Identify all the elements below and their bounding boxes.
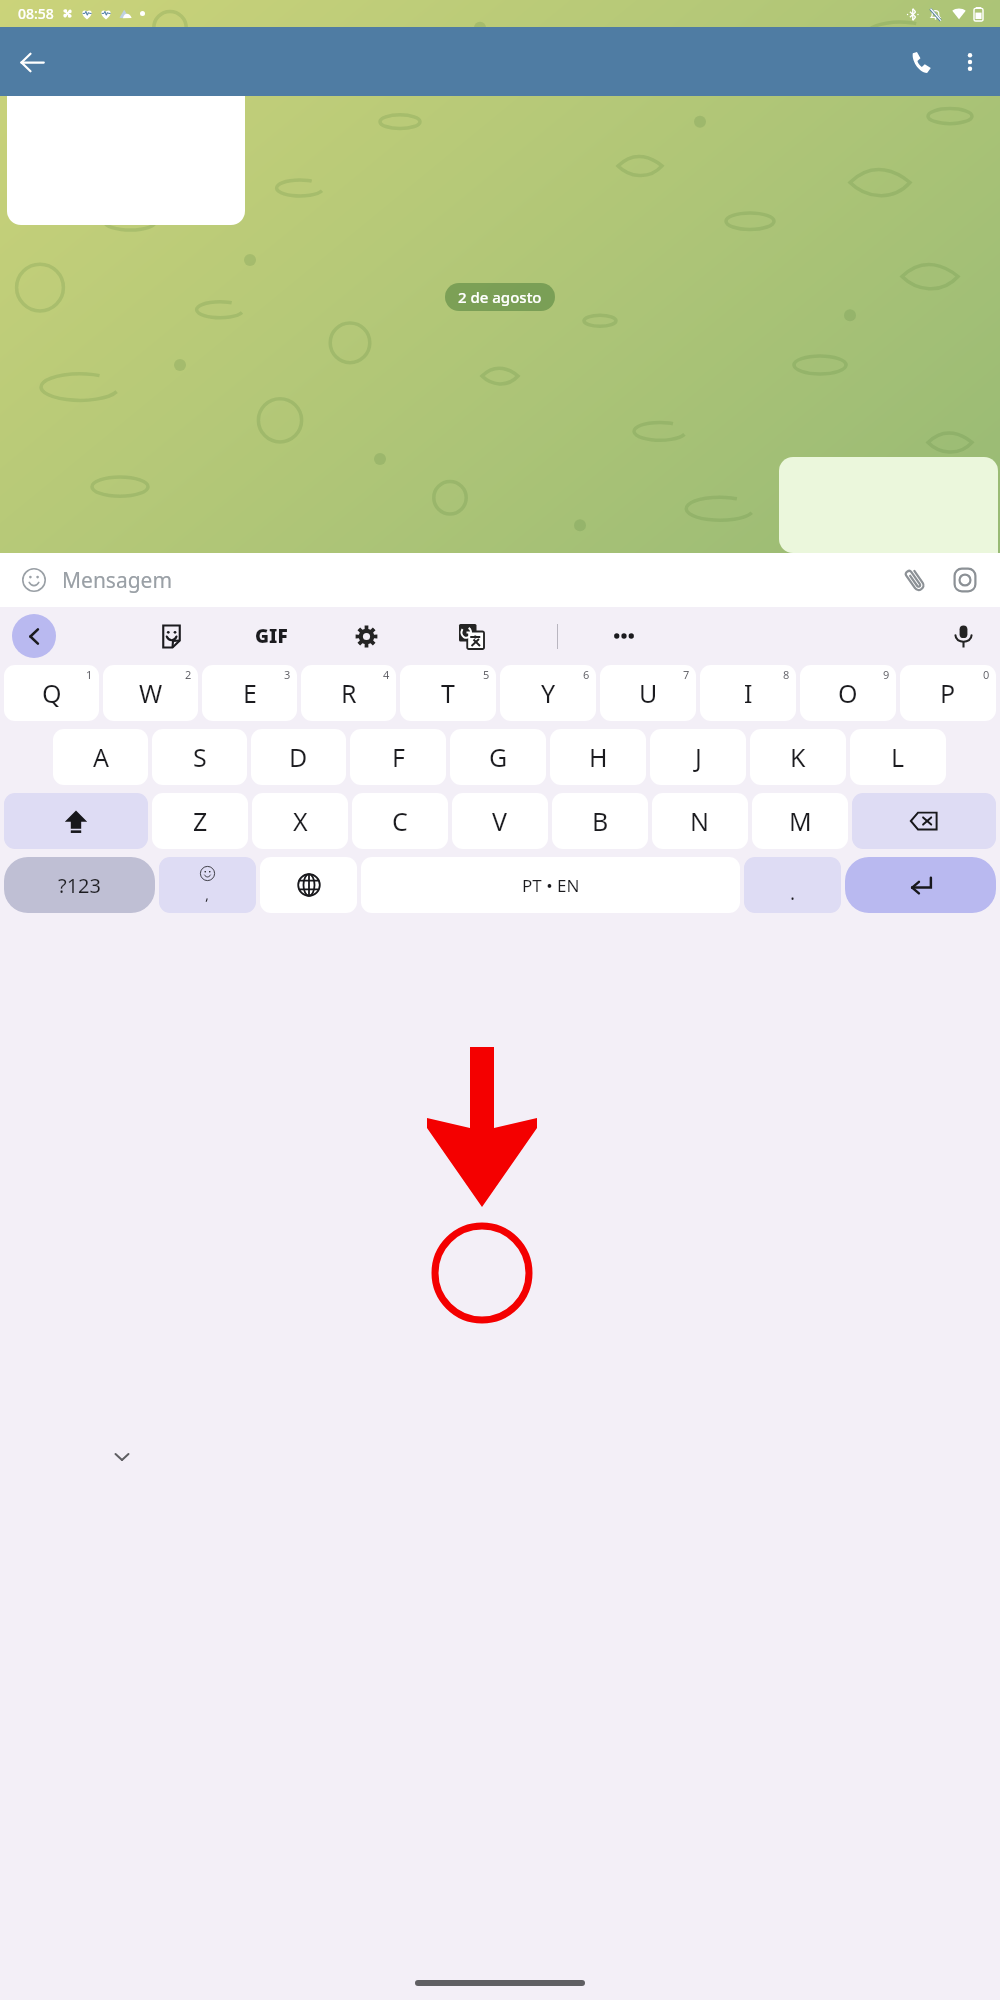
button[interactable]: F [350,729,446,785]
staticText: 2 de agosto [458,287,542,307]
button[interactable]: PT • EN [361,857,740,913]
staticText: 9 [883,667,890,682]
button[interactable]: Emoji [14,560,54,600]
staticText: C [392,804,408,838]
button[interactable]: Emoji and comma [159,857,256,913]
button[interactable]: K [750,729,846,785]
button[interactable]: W [103,665,198,721]
staticText: T [441,676,455,710]
button[interactable]: Z [152,793,248,849]
button[interactable]: ?123 [4,857,155,913]
button[interactable]: Backspace [852,793,996,849]
staticText: P [940,676,956,710]
staticText: 6 [583,667,590,682]
button[interactable]: L [850,729,946,785]
staticText: K [790,740,806,774]
button[interactable]: S [152,729,247,785]
button[interactable]: Call [898,38,946,86]
staticText: N [690,804,710,838]
staticText: 08:58 [18,4,54,23]
staticText: G [489,740,508,774]
staticText: U [639,676,658,710]
button[interactable]: Voice input [940,613,986,659]
button[interactable]: O [800,665,896,721]
button[interactable]: J [650,729,746,785]
button[interactable]: I [700,665,796,721]
button[interactable]: Stickers [148,613,194,659]
button[interactable]: More [601,613,647,659]
staticText: S [193,740,207,774]
button[interactable]: T [400,665,496,721]
staticText: J [695,740,702,774]
staticText: Z [193,804,208,838]
button[interactable]: B [552,793,648,849]
button[interactable]: GIF [245,613,297,659]
button[interactable]: . [744,857,841,913]
staticText: O [838,676,858,710]
staticText: 3 [284,667,291,682]
button[interactable]: Shift [4,793,148,849]
staticText: Q [42,676,62,710]
button[interactable]: Q [4,665,99,721]
button[interactable]: X [252,793,348,849]
button[interactable]: Settings [343,613,389,659]
button[interactable]: A [53,729,148,785]
staticText: V [492,804,508,838]
staticText: H [589,740,608,774]
staticText: 0 [983,667,990,682]
staticText: E [243,676,257,710]
staticText: . [790,880,796,906]
button[interactable]: E [202,665,297,721]
staticText: 5 [483,667,490,682]
button[interactable]: D [251,729,346,785]
button[interactable]: N [652,793,748,849]
button[interactable]: 2 de agosto [445,283,555,311]
button[interactable]: Back [8,38,56,86]
staticText: I [744,676,753,710]
staticText: X [293,804,308,838]
staticText: Mensagem [62,566,173,595]
staticText: D [289,740,308,774]
button[interactable]: Enter [845,857,996,913]
staticText: M [789,804,812,838]
button[interactable]: H [550,729,646,785]
staticText: B [592,804,609,838]
button[interactable]: M [752,793,848,849]
staticText: 7 [683,667,690,682]
button[interactable]: P [900,665,996,721]
staticText: 2 [185,667,192,682]
button[interactable]: More options [946,38,994,86]
staticText: GIF [255,623,288,649]
staticText: ?123 [58,872,101,899]
staticText: F [392,740,405,774]
staticText: Y [541,676,556,710]
button[interactable]: G [450,729,546,785]
button[interactable]: Expand toolbar [12,614,56,658]
staticText: A [93,740,109,774]
staticText: , [205,884,210,904]
button[interactable]: V [452,793,548,849]
button[interactable]: Y [500,665,596,721]
button[interactable]: R [301,665,396,721]
staticText: 1 [86,667,93,682]
button[interactable] [7,96,245,225]
button[interactable]: Camera [944,559,986,601]
button[interactable]: Hide keyboard [100,1435,144,1479]
button[interactable]: C [352,793,448,849]
staticText: W [139,676,163,710]
staticText: 4 [383,667,390,682]
staticText: 8 [783,667,790,682]
button[interactable]: Translate [448,613,494,659]
staticText: PT • EN [522,874,580,897]
button[interactable] [779,457,998,553]
staticText: R [341,676,357,710]
button[interactable]: Attach [894,559,936,601]
button[interactable]: U [600,665,696,721]
button[interactable]: Change language [260,857,357,913]
staticText: L [891,740,905,774]
